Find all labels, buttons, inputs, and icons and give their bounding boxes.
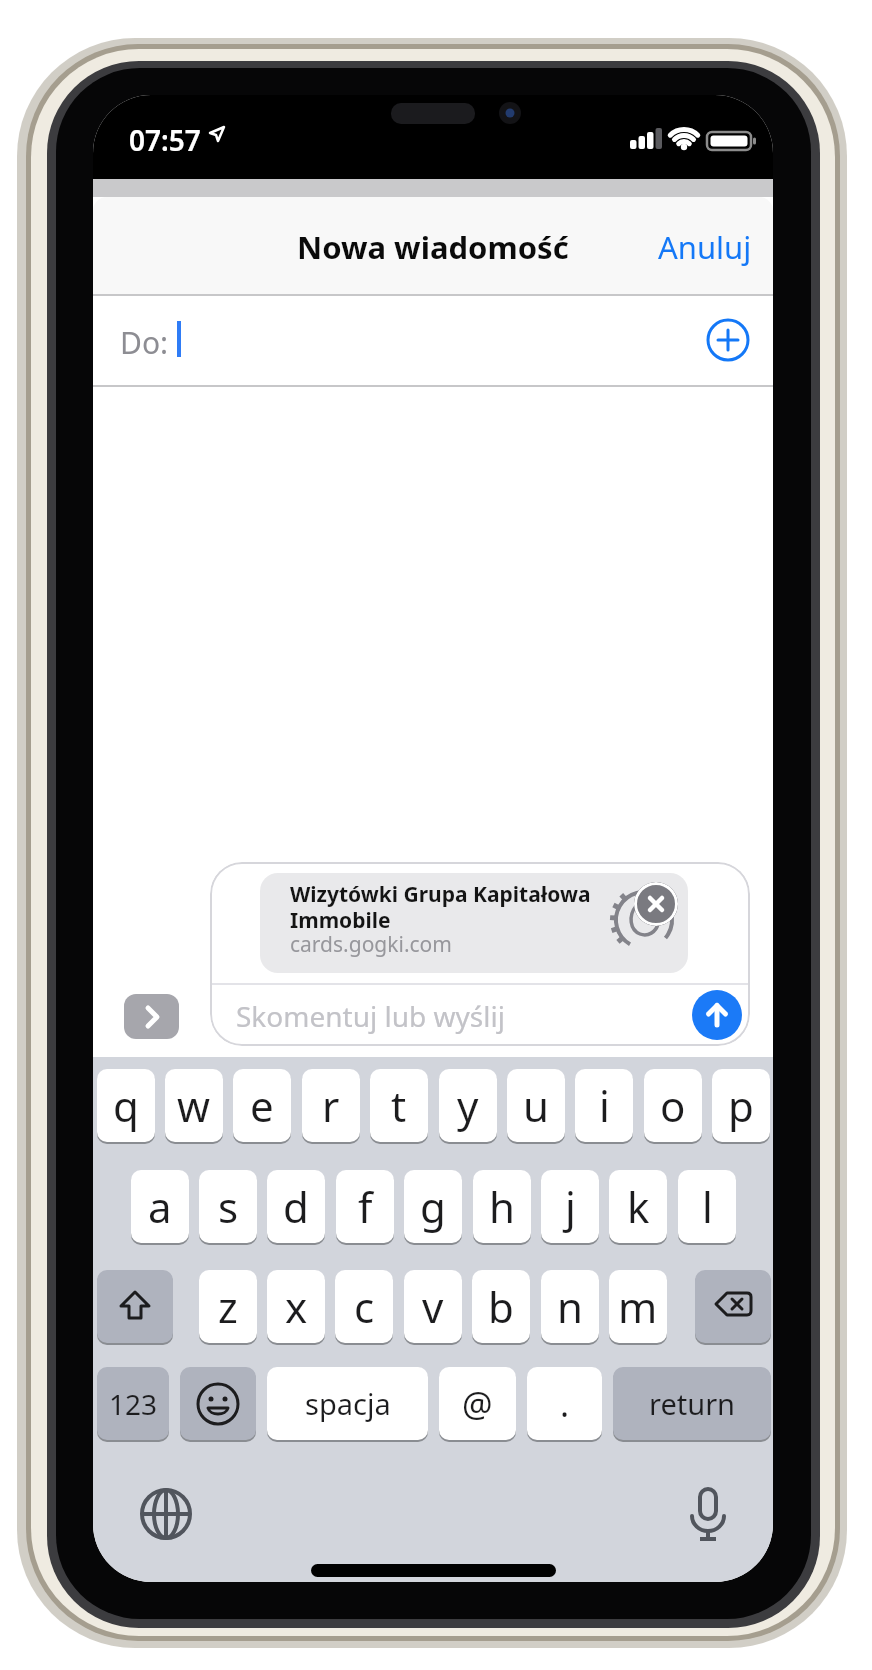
button[interactable]: 123 [97,1367,169,1440]
staticText: Nowa wiadomość [297,226,569,268]
button[interactable]: e [233,1069,291,1142]
staticText: u [523,1077,549,1134]
staticText: h [489,1178,515,1235]
button[interactable]: @ [439,1367,516,1440]
button[interactable]: x [267,1270,325,1343]
staticText: g [420,1178,446,1235]
button[interactable]: z [199,1270,257,1343]
staticText: Skomentuj lub wyślij [236,997,505,1035]
staticText: k [627,1178,650,1235]
button[interactable]: c [335,1270,393,1343]
button[interactable]: return [613,1367,771,1440]
button[interactable]: u [507,1069,565,1142]
button[interactable]: q [97,1069,155,1142]
button[interactable] [180,1367,256,1440]
button[interactable] [707,319,749,361]
staticText: n [557,1278,583,1335]
staticText: z [218,1278,238,1335]
staticText: q [113,1077,139,1134]
button[interactable]: t [370,1069,428,1142]
button[interactable]: n [541,1270,599,1343]
staticText: i [599,1077,610,1134]
button[interactable]: i [575,1069,633,1142]
staticText: t [391,1077,407,1134]
button[interactable]: a [131,1170,189,1243]
staticText: x [285,1278,308,1335]
button[interactable]: j [541,1170,599,1243]
button[interactable] [97,1270,173,1343]
staticText: e [250,1077,274,1134]
button[interactable]: . [527,1367,602,1440]
button[interactable]: m [609,1270,667,1343]
button[interactable]: f [336,1170,394,1243]
button[interactable] [140,1488,192,1540]
button[interactable]: spacja [267,1367,428,1440]
staticText: m [618,1278,658,1335]
button[interactable]: h [473,1170,531,1243]
staticText: Do: [120,322,169,363]
button[interactable]: s [199,1170,257,1243]
staticText: w [177,1077,211,1134]
button[interactable]: Anuluj [658,226,752,268]
staticText: l [702,1178,713,1235]
button[interactable]: p [712,1069,770,1142]
button[interactable]: g [404,1170,462,1243]
staticText: f [358,1178,373,1235]
staticText: return [649,1384,736,1423]
staticText: v [422,1278,444,1335]
staticText: 123 [109,1385,158,1423]
button[interactable] [692,990,742,1040]
staticText: a [148,1178,172,1235]
staticText: 07:57 [129,121,201,159]
staticText: p [728,1077,754,1134]
button[interactable]: y [439,1069,497,1142]
staticText: c [354,1278,375,1335]
button[interactable]: d [267,1170,325,1243]
staticText: spacja [305,1384,391,1423]
staticText: Anuluj [658,226,752,268]
staticText: cards.gogki.com [290,930,452,959]
staticText: y [457,1077,479,1134]
staticText: b [488,1278,514,1335]
button[interactable] [260,873,688,973]
button[interactable]: w [165,1069,223,1142]
button[interactable]: r [302,1069,360,1142]
staticText: d [283,1178,309,1235]
button[interactable] [124,994,179,1039]
staticText: r [322,1077,340,1134]
staticText: j [565,1178,576,1235]
staticText: @ [462,1381,493,1427]
staticText: Wizytówki Grupa Kapitałowa Immobile [290,880,591,934]
button[interactable]: k [609,1170,667,1243]
button[interactable] [634,882,678,926]
staticText: . [560,1381,570,1427]
button[interactable]: b [472,1270,530,1343]
button[interactable] [695,1270,771,1343]
button[interactable]: o [644,1069,702,1142]
staticText: o [660,1077,686,1134]
button[interactable] [686,1487,730,1543]
button[interactable]: v [404,1270,462,1343]
button[interactable]: l [678,1170,736,1243]
staticText: s [218,1178,239,1235]
